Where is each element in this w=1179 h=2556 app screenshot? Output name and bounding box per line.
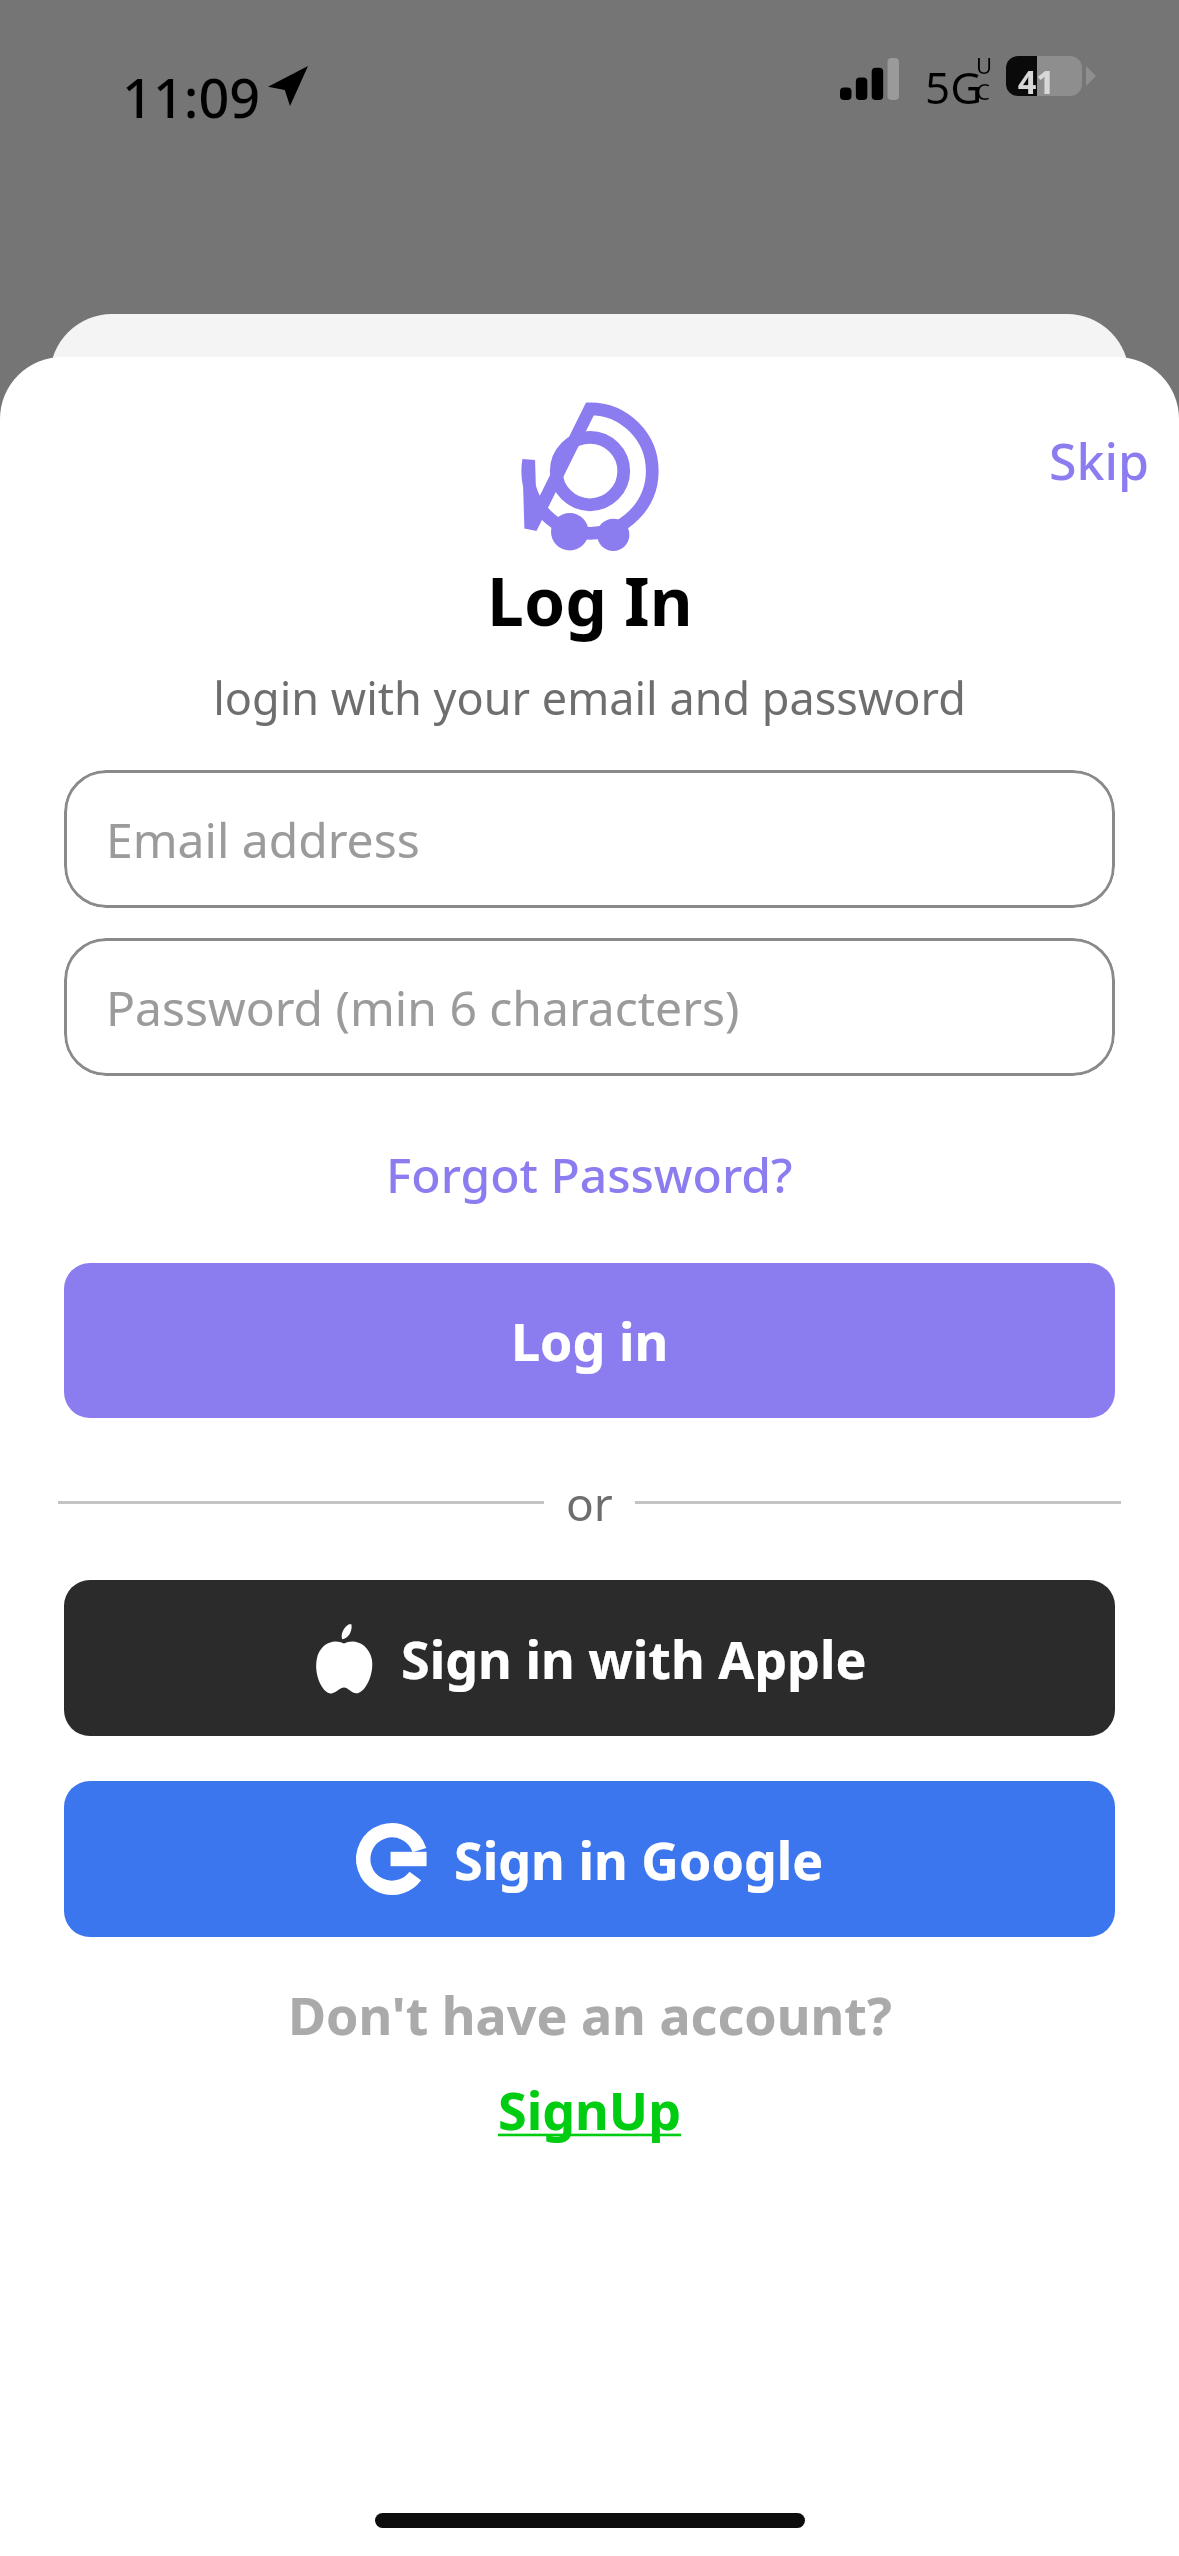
staticText: 11:09 xyxy=(122,60,261,134)
staticText: Skip xyxy=(1049,427,1149,495)
staticText: Sign in Google xyxy=(454,1824,824,1895)
button[interactable]: Skip xyxy=(1019,419,1179,503)
button[interactable]: Forgot Password? xyxy=(366,1134,813,1215)
staticText: Log in xyxy=(511,1305,669,1376)
staticText: Password (min 6 characters) xyxy=(106,975,740,1040)
button[interactable]: Sign in Google xyxy=(64,1781,1115,1937)
button[interactable]: Password (min 6 characters) xyxy=(64,938,1115,1076)
staticText: Log In xyxy=(487,555,693,645)
staticText: U xyxy=(976,50,993,80)
other: App logo xyxy=(515,405,665,555)
button[interactable]: Log in xyxy=(64,1263,1115,1418)
button[interactable]: SignUp xyxy=(474,2068,706,2151)
staticText: SignUp xyxy=(498,2074,682,2145)
staticText: or xyxy=(566,1472,613,1532)
staticText: Forgot Password? xyxy=(386,1142,793,1207)
button[interactable]: Sign in with Apple xyxy=(64,1580,1115,1736)
staticText: login with your email and password xyxy=(213,667,966,728)
staticText: 41 xyxy=(1018,60,1055,104)
staticText: 5G xyxy=(925,57,983,117)
staticText: Email address xyxy=(106,807,420,872)
staticText: C xyxy=(976,76,990,106)
staticText: Don't have an account? xyxy=(288,1979,892,2050)
button[interactable]: Email address xyxy=(64,770,1115,908)
staticText: Sign in with Apple xyxy=(401,1623,867,1694)
